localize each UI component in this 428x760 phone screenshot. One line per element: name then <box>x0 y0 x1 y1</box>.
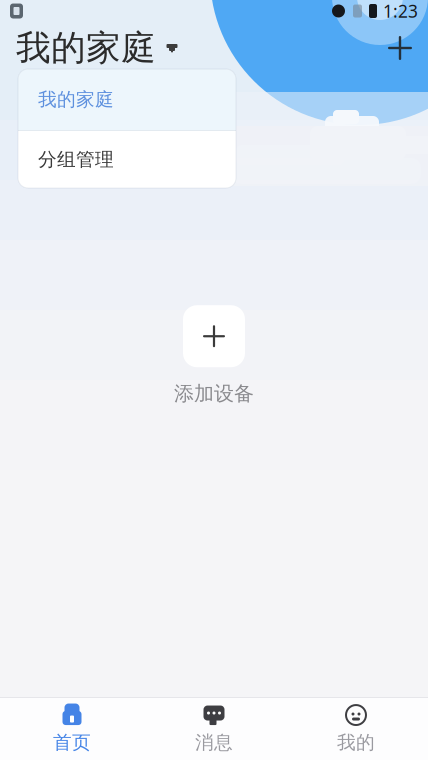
button[interactable]: 首页 <box>1 698 143 760</box>
button[interactable]: 分组管理 <box>18 131 236 188</box>
button[interactable]: 添加设备 <box>150 299 278 412</box>
staticText: 我的家庭 <box>16 27 156 69</box>
button[interactable]: 消息 <box>143 698 285 760</box>
button[interactable]: Add <box>378 26 422 70</box>
staticText: 我的家庭 <box>38 88 114 111</box>
staticText: 首页 <box>53 731 91 754</box>
button[interactable]: 我的家庭 <box>0 21 178 75</box>
staticText: 1:23 <box>383 0 418 22</box>
staticText: 我的 <box>337 731 375 754</box>
button[interactable]: 我的家庭 <box>18 69 236 130</box>
staticText: 分组管理 <box>38 148 114 171</box>
button[interactable]: 我的 <box>285 698 427 760</box>
staticText: 添加设备 <box>174 381 254 406</box>
staticText: 消息 <box>195 731 233 754</box>
